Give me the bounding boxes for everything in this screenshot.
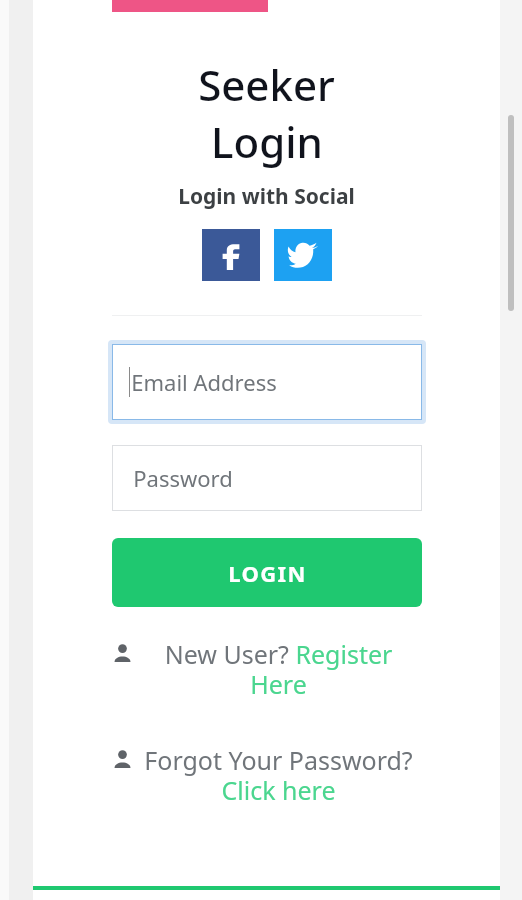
button[interactable]: Email Address: [112, 344, 422, 420]
button[interactable]: Password: [112, 445, 422, 511]
button[interactable]: Login with Twitter: [274, 229, 332, 281]
staticText: New User? Register Here: [136, 637, 421, 702]
staticText: Seeker: [198, 56, 335, 113]
staticText: LOGIN: [228, 558, 307, 588]
staticText: Login: [211, 113, 323, 170]
staticText: Password: [133, 463, 233, 493]
staticText: Email Address: [131, 367, 277, 397]
button[interactable]: LOGIN: [112, 538, 422, 607]
button[interactable]: New User? Register Here: [97, 637, 437, 702]
button[interactable]: Forgot Your Password? Click here: [97, 743, 437, 808]
staticText: Forgot Your Password? Click here: [136, 743, 421, 808]
staticText: Login with Social: [178, 182, 355, 211]
button[interactable]: Login with Facebook: [202, 229, 260, 281]
